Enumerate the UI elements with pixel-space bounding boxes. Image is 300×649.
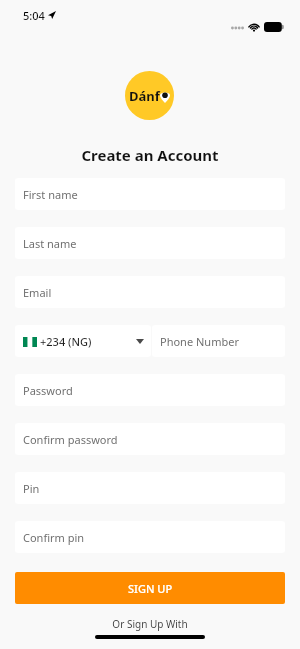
staticText: Or Sign Up With — [112, 617, 188, 631]
staticText: Confirm password — [23, 432, 118, 447]
button[interactable]: SIGN UP — [15, 572, 285, 604]
staticText: Email — [23, 285, 52, 300]
button[interactable]: Pin — [15, 472, 285, 504]
staticText: Create an Account — [81, 145, 219, 165]
button[interactable]: First name — [15, 178, 285, 210]
button[interactable]: +234 (NG) — [15, 325, 151, 357]
staticText: Pin — [23, 481, 40, 496]
staticText: Last name — [23, 236, 77, 251]
staticText: 5:04 — [23, 8, 45, 23]
button[interactable]: Last name — [15, 227, 285, 259]
staticText: +234 (NG) — [40, 334, 92, 349]
button[interactable]: Password — [15, 374, 285, 406]
staticText: Password — [23, 383, 73, 398]
staticText: Confirm pin — [23, 530, 85, 545]
button[interactable]: Confirm password — [15, 423, 285, 455]
staticText: Dánf — [129, 87, 160, 105]
button[interactable]: Phone Number — [152, 325, 285, 357]
staticText: First name — [23, 187, 78, 202]
staticText: SIGN UP — [128, 581, 173, 596]
button[interactable]: Email — [15, 276, 285, 308]
staticText: Phone Number — [160, 334, 239, 349]
button[interactable]: Confirm pin — [15, 521, 285, 553]
